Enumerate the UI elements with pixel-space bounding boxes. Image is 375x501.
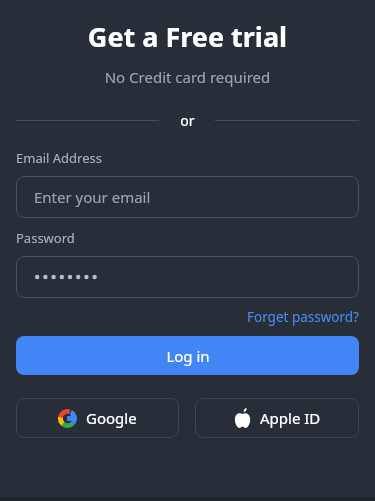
staticText: Log in [166,346,210,366]
staticText: Forget password? [247,308,359,326]
button[interactable]: Log in [16,336,359,375]
button[interactable]: Google [16,398,179,438]
button[interactable]: Enter your email [16,176,359,218]
staticText: Apple ID [260,408,321,428]
button[interactable]: Apple ID [195,398,359,438]
staticText: Get a Free trial [0,18,375,55]
staticText: Email Address [16,149,102,167]
staticText: No Credit card required [0,67,375,87]
staticText: Google [86,408,137,428]
staticText: Enter your email [34,187,151,207]
button[interactable] [16,256,359,298]
staticText: Password [16,229,75,247]
button[interactable]: Forget password? [247,308,359,326]
staticText: or [180,111,195,130]
